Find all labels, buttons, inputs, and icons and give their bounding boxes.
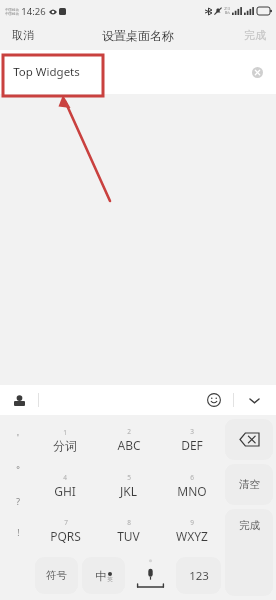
staticText: JKL (120, 483, 137, 499)
button[interactable]: Input settings (8, 389, 30, 411)
button[interactable]: ° (5, 459, 31, 481)
staticText: 分词 (53, 438, 77, 453)
staticText: 符号 (46, 569, 67, 582)
button[interactable]: Top Widgets (0, 50, 276, 94)
staticText: 5 (127, 473, 131, 482)
button[interactable]: Clear text (248, 63, 266, 81)
button[interactable]: 清空 (225, 464, 273, 505)
staticText: 8 (127, 518, 131, 527)
button[interactable]: 9 (161, 509, 222, 552)
staticText: 清空 (239, 478, 260, 491)
staticText: 中国移动 (5, 12, 19, 16)
staticText: 213 (224, 7, 230, 11)
button[interactable]: 123 (176, 557, 221, 594)
button[interactable]: 6 (161, 464, 222, 507)
staticText: ! (17, 527, 20, 539)
button[interactable]: 中 (82, 557, 125, 594)
staticText: 完成 (239, 519, 260, 532)
staticText: ABC (117, 437, 141, 453)
staticText: TUV (117, 528, 140, 544)
staticText: 英 (107, 576, 113, 583)
staticText: 2 (127, 427, 131, 436)
button[interactable]: ' (5, 427, 31, 449)
button[interactable]: 2 (98, 418, 159, 462)
staticText: 设置桌面名称 (102, 28, 174, 43)
staticText: 6 (190, 473, 194, 482)
staticText: 7 (64, 518, 68, 527)
staticText: 3 (190, 427, 194, 436)
button[interactable]: 符号 (35, 557, 78, 594)
staticText: B/s (225, 11, 230, 15)
staticText: 1 (63, 428, 67, 437)
button[interactable]: 4 (34, 464, 96, 507)
button[interactable]: Delete (225, 419, 273, 460)
staticText: 4 (63, 473, 67, 482)
staticText: 中国移动 (5, 8, 19, 12)
button[interactable]: ? (5, 491, 31, 513)
button[interactable]: 取消 (0, 22, 46, 48)
button[interactable]: 完成 (234, 22, 276, 48)
button[interactable]: ! (5, 522, 31, 544)
button[interactable]: Hide keyboard (242, 388, 266, 412)
button[interactable]: 5 (98, 464, 159, 507)
staticText: 中 (95, 569, 107, 583)
button[interactable]: Emoji (202, 388, 226, 412)
button[interactable]: 1 (34, 418, 96, 462)
staticText: 9 (190, 518, 194, 527)
staticText: 取消 (12, 28, 34, 42)
button[interactable]: 7 (34, 509, 96, 552)
staticText: ' (17, 432, 19, 444)
staticText: Top Widgets (13, 64, 80, 80)
staticText: 123 (189, 568, 209, 584)
staticText: 完成 (244, 28, 266, 42)
staticText: 14:26 (21, 5, 46, 18)
staticText: PQRS (50, 528, 81, 544)
button[interactable]: 3 (161, 418, 222, 462)
button[interactable]: Voice input (129, 555, 172, 596)
staticText: ° (16, 464, 20, 476)
staticText: GHI (54, 483, 76, 499)
button[interactable]: 完成 (225, 509, 273, 596)
button[interactable]: 8 (98, 509, 159, 552)
staticText: WXYZ (176, 528, 208, 544)
staticText: DEF (181, 437, 203, 453)
staticText: MNO (177, 483, 207, 499)
staticText: ? (16, 496, 20, 508)
